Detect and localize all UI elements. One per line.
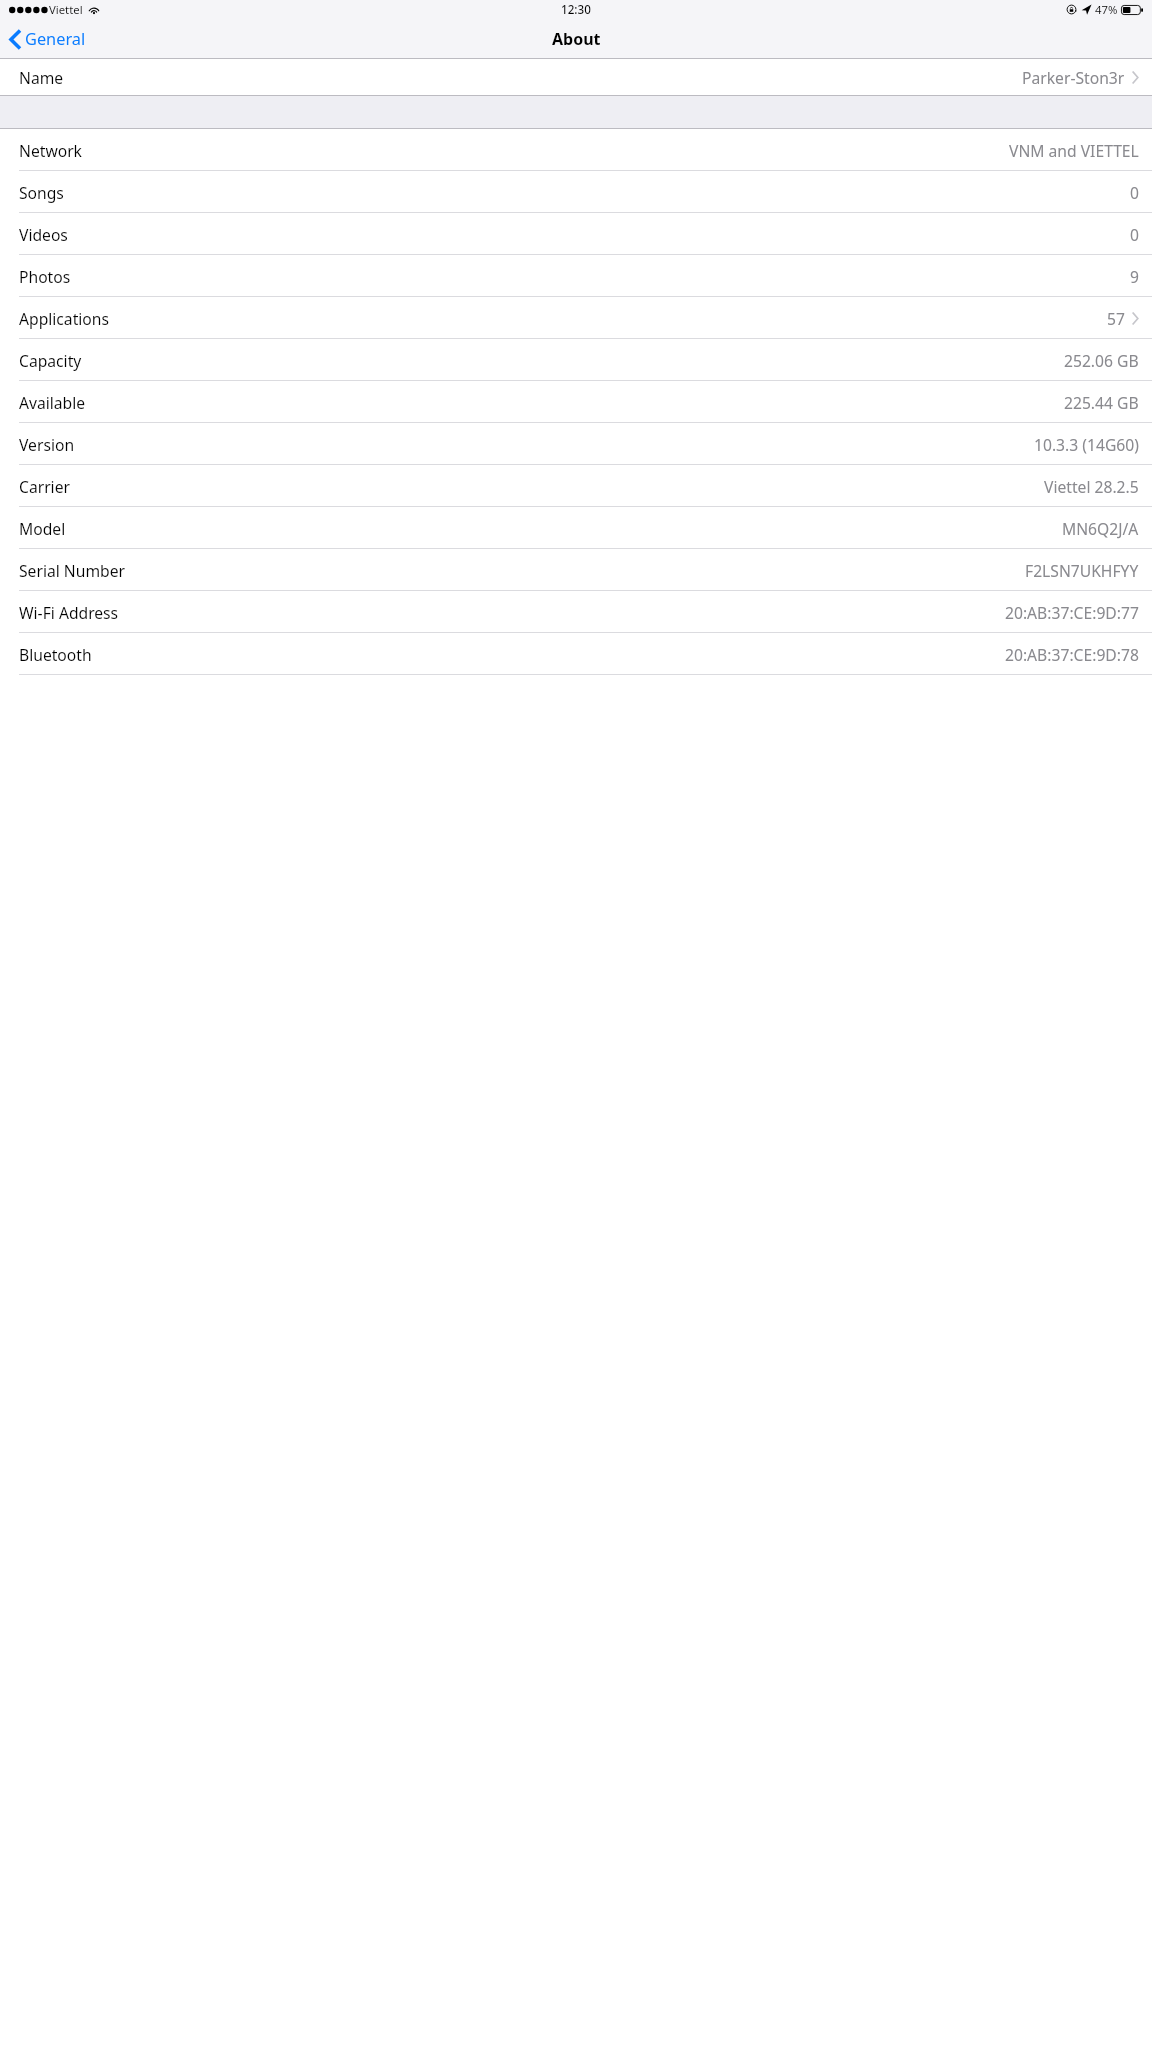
staticText: 12:30	[561, 2, 591, 18]
staticText: F2LSN7UKHFYY	[1025, 560, 1139, 581]
button[interactable]: Applications	[0, 297, 1152, 339]
staticText: Parker-Ston3r	[1022, 67, 1125, 88]
staticText: 9	[1130, 266, 1139, 287]
staticText: Wi-Fi Address	[19, 602, 119, 623]
staticText: 20:AB:37:CE:9D:78	[1005, 644, 1139, 665]
staticText: 0	[1130, 182, 1139, 203]
button[interactable]: Bluetooth	[0, 633, 1152, 675]
staticText: Videos	[19, 224, 68, 245]
button[interactable]: Version	[0, 423, 1152, 465]
button[interactable]: Available	[0, 381, 1152, 423]
button[interactable]: Photos	[0, 255, 1152, 297]
other: Open Name	[1132, 71, 1139, 84]
button[interactable]: Model	[0, 507, 1152, 549]
staticText: 57	[1107, 308, 1125, 329]
staticText: Songs	[19, 182, 64, 203]
button[interactable]: Serial Number	[0, 549, 1152, 591]
staticText: Available	[19, 392, 86, 413]
button[interactable]: Songs	[0, 171, 1152, 213]
button[interactable]: Wi-Fi Address	[0, 591, 1152, 633]
staticText: Photos	[19, 266, 71, 287]
button[interactable]: General	[6, 24, 91, 54]
button[interactable]: Name	[0, 59, 1152, 95]
staticText: Name	[19, 67, 64, 88]
button[interactable]: Network	[0, 129, 1152, 171]
staticText: Serial Number	[19, 560, 125, 581]
staticText: Viettel 28.2.5	[1044, 476, 1139, 497]
staticText: 252.06 GB	[1064, 350, 1139, 371]
staticText: Model	[19, 518, 66, 539]
button[interactable]: Carrier	[0, 465, 1152, 507]
staticText: General	[25, 28, 86, 50]
staticText: 10.3.3 (14G60)	[1034, 434, 1139, 455]
staticText: Network	[19, 140, 82, 161]
staticText: Viettel	[49, 2, 83, 17]
button[interactable]: Videos	[0, 213, 1152, 255]
staticText: VNM and VIETTEL	[1009, 140, 1139, 161]
button[interactable]: Capacity	[0, 339, 1152, 381]
staticText: Capacity	[19, 350, 82, 371]
staticText: Bluetooth	[19, 644, 92, 665]
staticText: Version	[19, 434, 75, 455]
staticText: 0	[1130, 224, 1139, 245]
other: Open Applications	[1132, 312, 1139, 325]
staticText: About	[552, 28, 601, 50]
staticText: 47%	[1095, 2, 1118, 17]
staticText: MN6Q2J/A	[1062, 518, 1139, 539]
staticText: 225.44 GB	[1064, 392, 1139, 413]
staticText: Carrier	[19, 476, 70, 497]
staticText: Applications	[19, 308, 109, 329]
staticText: 20:AB:37:CE:9D:77	[1005, 602, 1139, 623]
